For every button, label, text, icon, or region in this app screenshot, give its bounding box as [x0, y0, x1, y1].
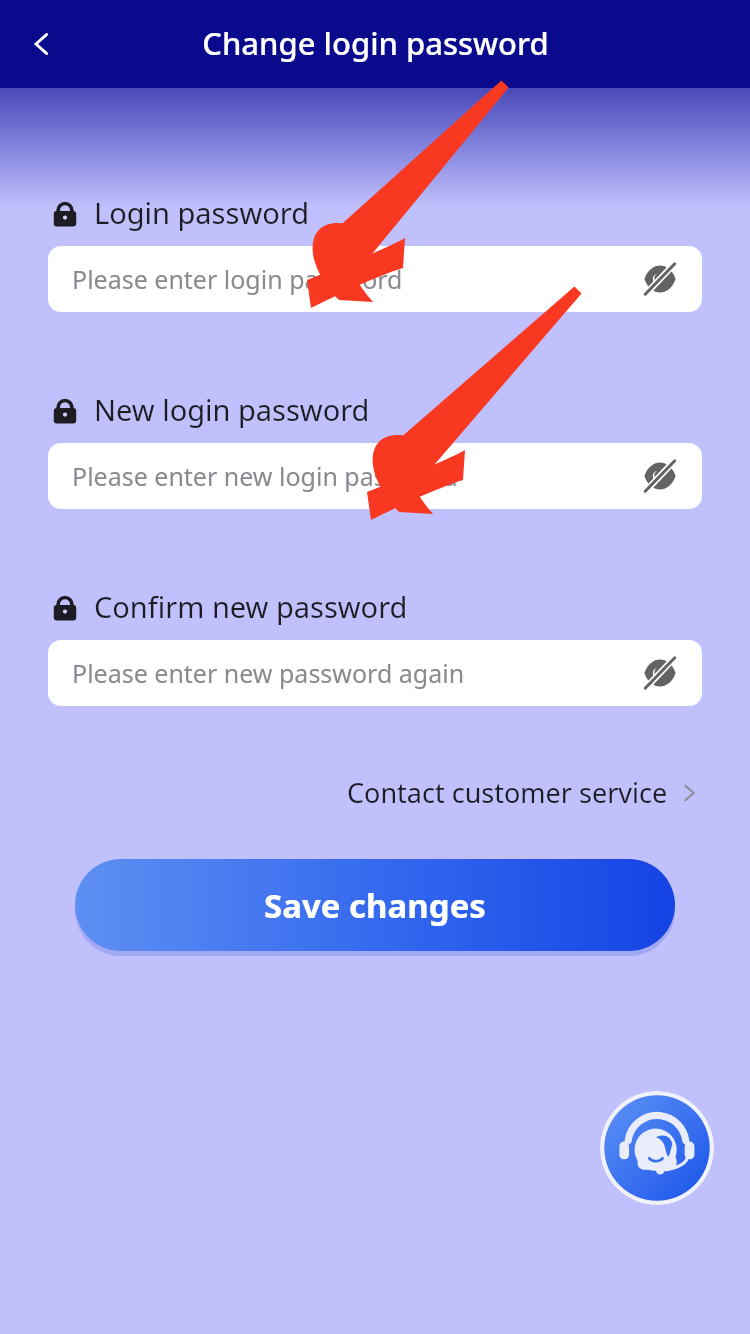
button[interactable]: Contact customer service: [600, 1091, 714, 1205]
button[interactable]: Please enter login password: [48, 246, 702, 312]
button[interactable]: Please enter new login password: [48, 443, 702, 509]
button[interactable]: Save changes: [75, 859, 675, 951]
staticText: Save changes: [264, 883, 486, 928]
staticText: Login password: [94, 193, 309, 232]
button[interactable]: Contact customer service: [347, 768, 702, 817]
staticText: Please enter login password: [72, 262, 403, 296]
staticText: Contact customer service: [347, 774, 668, 811]
button[interactable]: Show password: [638, 257, 682, 301]
staticText: Please enter new login password: [72, 459, 458, 493]
button[interactable]: Back: [10, 12, 74, 76]
button[interactable]: Show password: [638, 651, 682, 695]
staticText: New login password: [94, 390, 370, 429]
staticText: Confirm new password: [94, 587, 408, 626]
staticText: Please enter new password again: [72, 656, 465, 690]
button[interactable]: Please enter new password again: [48, 640, 702, 706]
staticText: Change login password: [202, 22, 549, 64]
button[interactable]: Show password: [638, 454, 682, 498]
